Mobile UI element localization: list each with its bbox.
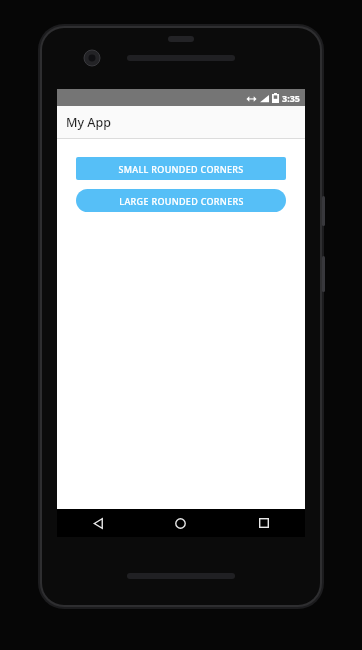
button[interactable]: Home — [139, 509, 222, 537]
button[interactable]: SMALL ROUNDED CORNERS — [76, 157, 286, 180]
button[interactable]: Back — [57, 509, 139, 537]
staticText: LARGE ROUNDED CORNERS — [119, 195, 244, 207]
staticText: 3:35 — [282, 92, 300, 104]
button[interactable]: Recent apps — [222, 509, 305, 537]
staticText: My App — [66, 114, 112, 131]
staticText: SMALL ROUNDED CORNERS — [118, 163, 244, 175]
button[interactable]: LARGE ROUNDED CORNERS — [76, 189, 286, 212]
